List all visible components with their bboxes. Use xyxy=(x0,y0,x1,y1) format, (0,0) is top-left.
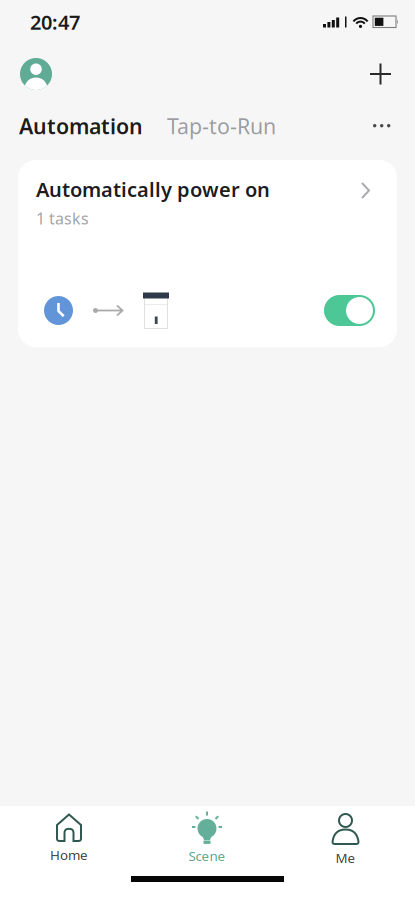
button[interactable]: Enabled xyxy=(324,295,375,326)
staticText: Me xyxy=(335,849,355,867)
button[interactable]: Automatically power on xyxy=(18,160,397,347)
button[interactable]: Scene xyxy=(138,811,276,865)
button[interactable]: More xyxy=(367,118,397,134)
button[interactable]: Me xyxy=(276,811,415,867)
button[interactable]: Profile xyxy=(20,58,52,90)
button[interactable]: Add xyxy=(364,57,397,90)
staticText: Home xyxy=(50,846,88,864)
staticText: Tap-to-Run xyxy=(167,112,276,140)
staticText: Automatically power on xyxy=(36,176,270,203)
button[interactable]: Tap-to-Run xyxy=(143,112,276,140)
staticText: 1 tasks xyxy=(36,208,89,229)
button[interactable]: Automation xyxy=(19,112,143,140)
staticText: Scene xyxy=(188,847,225,865)
staticText: Automation xyxy=(19,112,143,140)
staticText: 20:47 xyxy=(30,9,80,35)
button[interactable]: Home xyxy=(0,811,138,864)
